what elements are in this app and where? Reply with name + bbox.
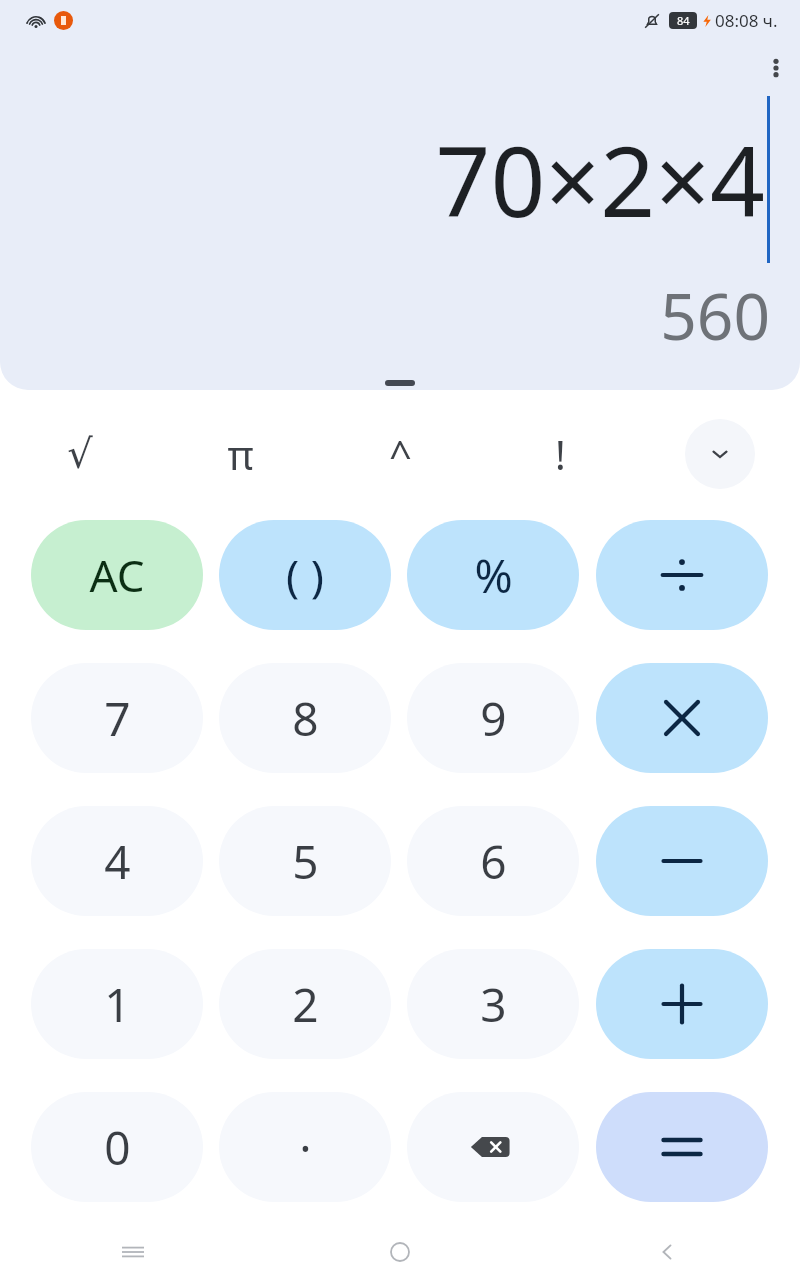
button[interactable]: · [219,1092,391,1202]
button[interactable]: Recents [0,1224,266,1280]
staticText: 9 [480,687,507,750]
button[interactable]: 2 [219,949,391,1059]
button[interactable]: 0 [31,1092,203,1202]
button[interactable]: ^ [320,408,480,500]
button[interactable]: % [407,520,579,630]
button[interactable]: AC [31,520,203,630]
staticText: 2 [292,973,319,1036]
staticText: ( ) [286,545,324,605]
button[interactable]: Minus [596,806,768,916]
staticText: 70×2×4 [435,114,765,245]
staticText: AC [89,545,145,605]
button[interactable]: 9 [407,663,579,773]
staticText: 84 [677,13,690,28]
staticText: 3 [480,973,507,1036]
button[interactable]: Expand functions [685,419,755,489]
staticText: ^ [389,427,412,481]
button[interactable]: Plus [596,949,768,1059]
button[interactable]: More options [752,44,800,92]
button[interactable]: Home [266,1224,533,1280]
button[interactable]: 5 [219,806,391,916]
staticText: 560 [660,272,770,359]
button[interactable]: π [160,408,320,500]
button[interactable] [385,380,415,386]
button[interactable]: 6 [407,806,579,916]
button[interactable]: Multiply [596,663,768,773]
staticText: % [474,544,513,607]
staticText: 8 [292,687,319,750]
staticText: 0 [104,1116,131,1179]
button[interactable]: Back [533,1224,800,1280]
staticText: 1 [104,973,131,1036]
button[interactable]: ! [480,408,640,500]
button[interactable]: Divide [596,520,768,630]
staticText: ! [555,427,566,481]
button[interactable]: 3 [407,949,579,1059]
button[interactable]: √ [0,408,160,500]
staticText: 5 [292,830,319,893]
button[interactable]: 7 [31,663,203,773]
staticText: √ [67,431,93,478]
button[interactable]: 1 [31,949,203,1059]
staticText: 4 [104,830,131,893]
button[interactable]: Equals [596,1092,768,1202]
staticText: π [227,427,254,481]
button[interactable]: 4 [31,806,203,916]
button[interactable]: 8 [219,663,391,773]
staticText: 7 [104,687,131,750]
staticText: 08:08 ч. [715,9,778,32]
staticText: · [299,1116,312,1179]
button[interactable]: ( ) [219,520,391,630]
button[interactable]: Backspace [407,1092,579,1202]
staticText: 6 [480,830,507,893]
